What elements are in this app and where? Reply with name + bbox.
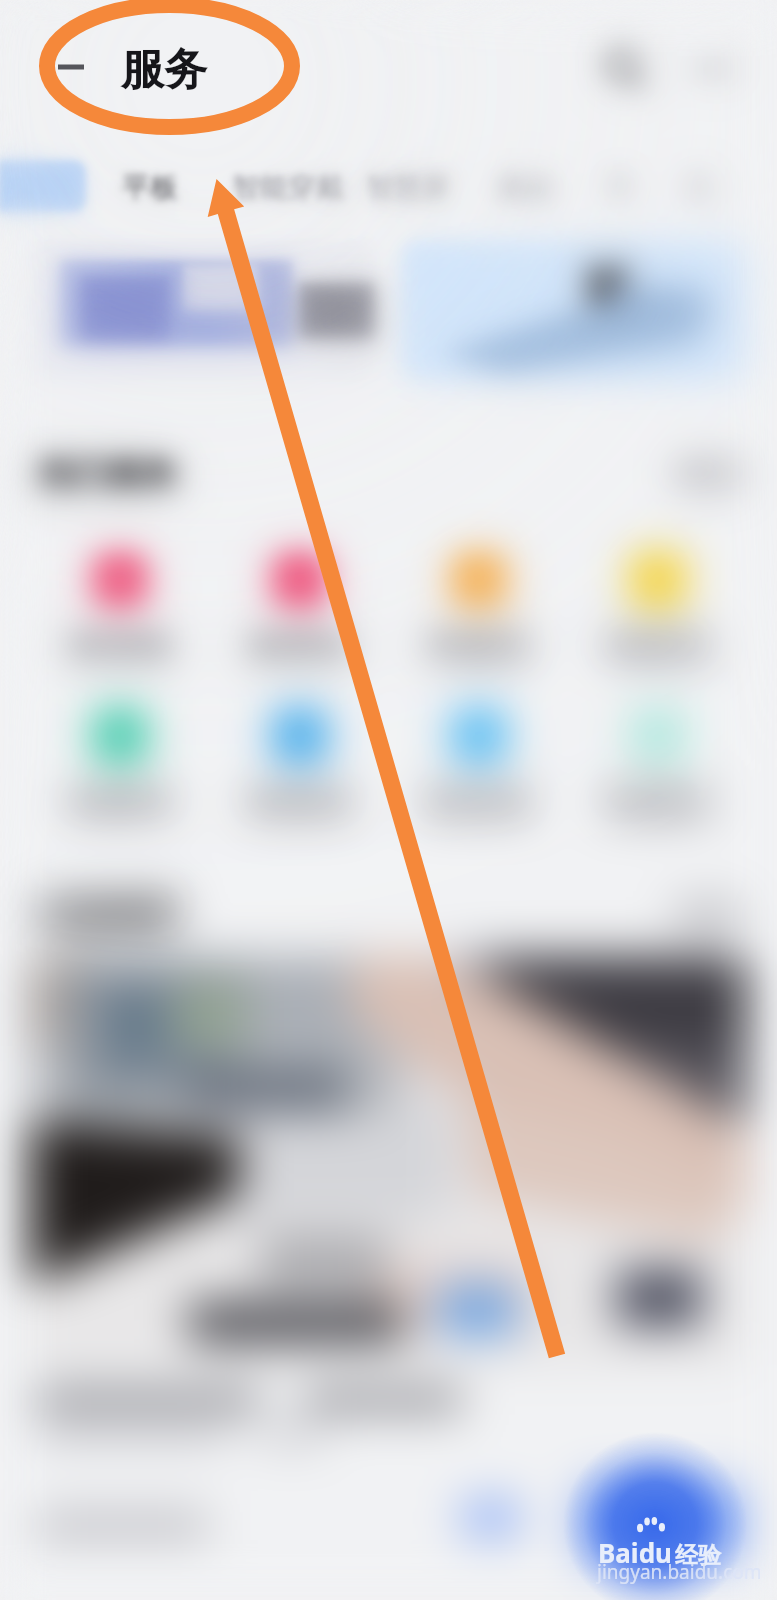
button[interactable]: 平板 <box>122 170 178 205</box>
button[interactable]: 平板 <box>122 170 178 205</box>
button[interactable] <box>32 955 745 1368</box>
button[interactable]: 智能穿戴 <box>232 170 344 205</box>
button[interactable]: 寄修服务 <box>389 552 568 663</box>
button[interactable]: 预约维修 <box>30 552 210 663</box>
button[interactable] <box>582 1486 738 1560</box>
button[interactable]: 智能穿戴 <box>232 170 344 205</box>
button[interactable]: 配件价格 <box>389 708 568 819</box>
button[interactable]: 更多 <box>675 458 741 489</box>
button[interactable] <box>462 1500 520 1536</box>
button[interactable]: 路由 <box>498 170 554 205</box>
button[interactable]: 服务政策 <box>210 708 389 819</box>
button[interactable]: 服务网点 <box>210 552 389 663</box>
button[interactable]: 路由 <box>498 170 554 205</box>
button[interactable]: 服务网点 <box>210 552 389 663</box>
button[interactable]: 服务政策 <box>210 708 389 819</box>
button[interactable] <box>582 1486 738 1560</box>
button[interactable]: 智慧屏 <box>366 170 450 205</box>
button[interactable]: 寄修服务 <box>389 552 568 663</box>
button[interactable]: 智慧屏 <box>366 170 450 205</box>
button[interactable]: 我的服务 <box>568 708 747 819</box>
button[interactable]: 更多 <box>675 458 741 489</box>
button[interactable]: 我的服务 <box>568 708 747 819</box>
button[interactable]: 更多 <box>675 899 741 930</box>
button[interactable] <box>462 1500 520 1536</box>
button[interactable]: 维修价格 <box>568 552 747 663</box>
button[interactable]: 服务网点 <box>210 552 389 663</box>
button[interactable]: 平板 <box>122 170 178 205</box>
button[interactable]: 保修查询 <box>30 708 210 819</box>
button[interactable] <box>0 160 86 212</box>
button[interactable]: 维修价格 <box>568 552 747 663</box>
button[interactable]: 服务政策 <box>210 708 389 819</box>
button[interactable]: 智慧屏 <box>366 170 450 205</box>
button[interactable]: 平板 <box>122 170 178 205</box>
button[interactable]: 更多 <box>675 899 741 930</box>
button[interactable]: 更多 <box>675 458 741 489</box>
button[interactable]: 配件价格 <box>389 708 568 819</box>
button[interactable]: 更多 <box>675 899 741 930</box>
button[interactable] <box>401 240 745 382</box>
button[interactable]: 保修查询 <box>30 708 210 819</box>
button[interactable] <box>401 240 745 382</box>
button[interactable]: 我的服务 <box>568 708 747 819</box>
button[interactable]: 更多 <box>675 899 741 930</box>
button[interactable]: 维修价格 <box>568 552 747 663</box>
button[interactable]: 预约维修 <box>30 552 210 663</box>
button[interactable]: 路由 <box>498 170 554 205</box>
button[interactable]: 预约维修 <box>30 552 210 663</box>
button[interactable]: Search <box>592 36 658 102</box>
button[interactable]: 智能穿戴 <box>232 170 344 205</box>
button[interactable] <box>462 1500 520 1536</box>
button[interactable]: 更多 <box>675 458 741 489</box>
button[interactable]: 寄修服务 <box>389 552 568 663</box>
staticText: 智慧屏 <box>366 170 450 205</box>
button[interactable]: 智慧屏 <box>366 170 450 205</box>
button[interactable] <box>462 1500 520 1536</box>
button[interactable] <box>32 955 745 1368</box>
button[interactable]: Search <box>592 36 658 102</box>
button[interactable] <box>32 240 375 382</box>
button[interactable]: 保修查询 <box>30 708 210 819</box>
button[interactable]: 我的服务 <box>568 708 747 819</box>
button[interactable]: 保修查询 <box>30 708 210 819</box>
button[interactable] <box>32 240 375 382</box>
staticText: Baidu <box>598 1535 672 1570</box>
button[interactable] <box>401 240 745 382</box>
button[interactable] <box>582 1486 738 1560</box>
button[interactable]: 配件价格 <box>389 708 568 819</box>
button[interactable]: 路由 <box>498 170 554 205</box>
button[interactable]: Search <box>592 36 658 102</box>
button[interactable] <box>0 160 86 212</box>
staticText: 配件价格 <box>427 786 531 819</box>
button[interactable] <box>32 955 745 1368</box>
button[interactable]: Search <box>592 36 658 102</box>
button[interactable]: 预约维修 <box>30 552 210 663</box>
button[interactable] <box>32 240 375 382</box>
button[interactable] <box>0 160 86 212</box>
button[interactable] <box>582 1486 738 1560</box>
button[interactable] <box>32 240 375 382</box>
button[interactable] <box>401 240 745 382</box>
button[interactable]: 寄修服务 <box>389 552 568 663</box>
button[interactable]: 服务网点 <box>210 552 389 663</box>
button[interactable]: 服务政策 <box>210 708 389 819</box>
button[interactable]: 维修价格 <box>568 552 747 663</box>
button[interactable]: 智能穿戴 <box>232 170 344 205</box>
button[interactable] <box>32 955 745 1368</box>
button[interactable] <box>0 160 86 212</box>
button[interactable]: 配件价格 <box>389 708 568 819</box>
